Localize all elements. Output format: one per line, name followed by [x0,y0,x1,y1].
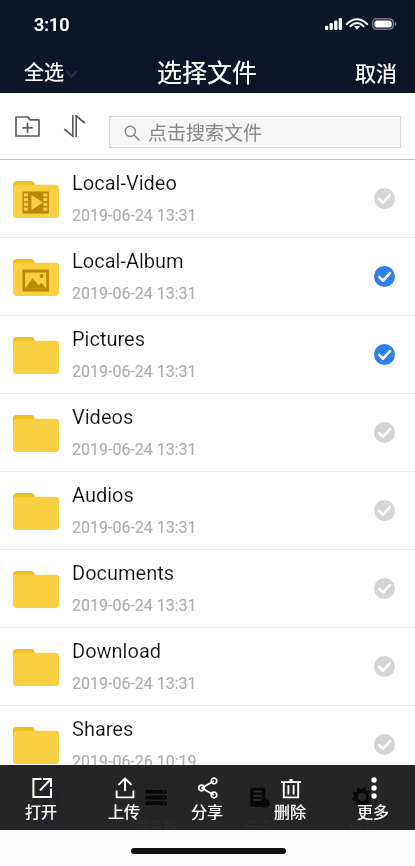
staticText: 选择文件 [157,53,258,89]
staticText: 本机 [38,815,66,835]
button[interactable]: Documents [0,550,415,628]
button[interactable]: Select Local-Album [358,250,410,302]
button[interactable]: Local-Album [0,238,415,316]
staticText: 2019-06-24 13:31 [72,206,197,225]
staticText: 点击搜索文件 [148,118,263,146]
button[interactable]: Sort [54,106,94,146]
staticText: Pictures [72,327,146,350]
button[interactable]: 打开 [0,765,83,830]
staticText: 3:10 [34,14,70,35]
staticText: Local-Video [72,171,177,194]
staticText: 2019-06-26 10:19 [72,752,197,771]
staticText: 2019-06-24 13:31 [72,674,197,693]
staticText: 2019-06-24 13:31 [72,518,197,537]
button[interactable]: 更多 [332,765,415,830]
button[interactable]: Select Documents [358,562,410,614]
button[interactable]: Select Download [358,640,410,692]
button[interactable]: Select Local-Video [358,172,410,224]
button[interactable]: New folder [7,106,47,146]
button[interactable]: Pictures [0,316,415,394]
button[interactable]: Select Audios [358,484,410,536]
staticText: 更多 [357,799,390,822]
staticText: Audios [72,483,134,506]
staticText: 分享 [191,799,224,822]
staticText: Download [72,639,162,662]
button[interactable]: Shares [0,706,415,784]
staticText: 2019-06-24 13:31 [72,440,197,459]
staticText: 删除 [274,799,307,822]
button[interactable]: 全选 [0,52,90,91]
staticText: 2019-06-24 13:31 [72,596,197,615]
staticText: 2019-06-24 13:31 [72,284,197,303]
button[interactable]: 取消 [337,52,415,92]
button[interactable]: Select Videos [358,406,410,458]
staticText: 服务器 [135,815,177,835]
button[interactable]: Audios [0,472,415,550]
button[interactable]: Select Shares [358,718,410,770]
button[interactable]: 上传 [83,765,166,830]
staticText: Videos [72,405,134,428]
button[interactable]: Local-Video [0,160,415,238]
button[interactable]: 删除 [249,765,332,830]
staticText: 打开 [25,799,58,822]
staticText: 设置 [349,815,377,835]
staticText: 2019-06-24 13:31 [72,362,197,381]
button[interactable]: 点击搜索文件 [109,116,401,148]
staticText: Documents [72,561,175,584]
staticText: Shares [72,717,134,740]
button[interactable]: Select Pictures [358,328,410,380]
staticText: 全选 [24,57,64,86]
staticText: 上传 [108,799,141,822]
staticText: Local-Album [72,249,184,272]
button[interactable]: Videos [0,394,415,472]
button[interactable]: 分享 [166,765,249,830]
button[interactable]: Download [0,628,415,706]
staticText: 任务 [245,815,273,835]
